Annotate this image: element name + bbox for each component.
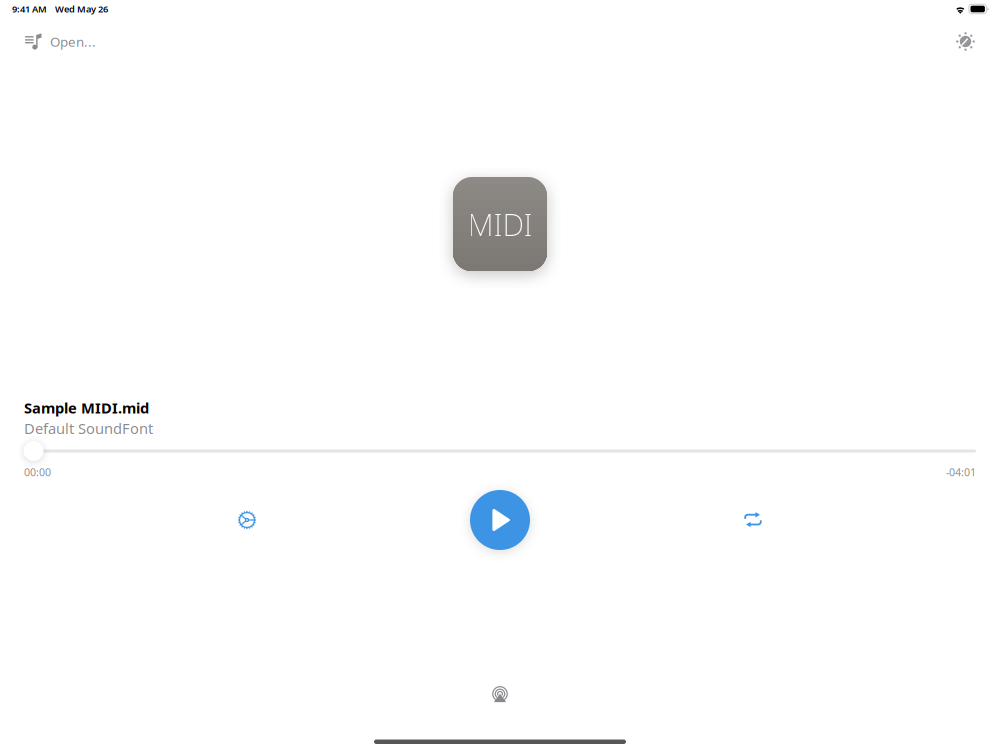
button[interactable]: Play (469, 489, 531, 551)
staticText: Sample MIDI.mid (24, 398, 149, 417)
staticText: 9:41 AM (12, 3, 47, 15)
staticText: Default SoundFont (24, 418, 153, 438)
staticText: 00:00 (24, 465, 51, 479)
staticText: Wed May 26 (55, 3, 108, 15)
button[interactable]: Settings (219, 492, 275, 548)
button[interactable]: Repeat (725, 492, 781, 548)
staticText: Open... (50, 33, 96, 50)
button[interactable]: Open... (16, 26, 105, 57)
staticText: MIDI (467, 204, 532, 244)
staticText: -04:01 (946, 465, 976, 479)
button[interactable]: Brightness (947, 23, 984, 60)
button[interactable]: AirPlay (480, 674, 520, 714)
